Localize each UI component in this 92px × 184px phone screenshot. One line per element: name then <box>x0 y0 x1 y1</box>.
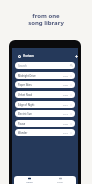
staticText: Wander <box>18 131 28 134</box>
button[interactable]: Wander <box>15 129 75 136</box>
staticText: from one song library <box>28 12 64 27</box>
staticText: Library <box>26 181 33 184</box>
staticText: Player <box>57 181 64 184</box>
button[interactable]: Edge of Night <box>15 101 75 108</box>
button[interactable]: Add playlist <box>73 53 79 59</box>
staticText: Pause <box>18 122 26 125</box>
staticText: Horizon <box>23 54 34 58</box>
staticText: 2:58 <box>63 93 68 96</box>
button[interactable]: Electric Sun <box>15 110 75 117</box>
staticText: Midnight Drive <box>18 74 36 77</box>
button[interactable]: Velvet Road <box>15 91 75 98</box>
staticText: Edge of Night <box>18 103 35 106</box>
button[interactable]: Paper Skies <box>15 81 75 88</box>
staticText: Paper Skies <box>18 83 32 86</box>
staticText: 3:31 <box>63 103 68 106</box>
staticText: Velvet Road <box>18 93 33 96</box>
staticText: 2:47 <box>63 131 68 134</box>
button[interactable]: Midnight Drive <box>15 72 75 79</box>
staticText: 4:12 <box>63 112 68 115</box>
button[interactable]: Search <box>15 62 75 69</box>
staticText: 4:05 <box>63 83 68 86</box>
button[interactable]: Library <box>14 176 45 184</box>
staticText: 3:42 <box>63 74 68 77</box>
button[interactable]: Pause <box>15 120 75 127</box>
staticText: Electric Sun <box>18 112 32 115</box>
button[interactable]: Player <box>45 176 76 184</box>
staticText: Search <box>18 64 27 68</box>
staticText: 3:08 <box>63 122 68 125</box>
